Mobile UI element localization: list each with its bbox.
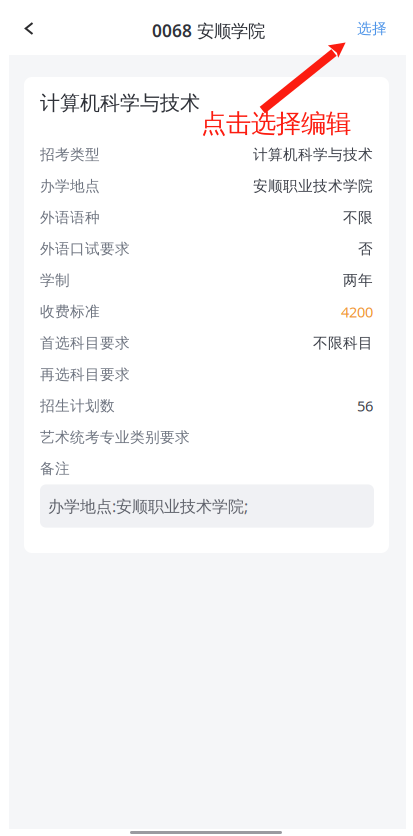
- staticText: 安顺职业技术学院: [253, 177, 373, 195]
- staticText: 选择: [357, 19, 387, 37]
- staticText: 计算机科学与技术: [40, 91, 200, 115]
- staticText: 两年: [343, 271, 373, 289]
- staticText: 首选科目要求: [40, 334, 130, 352]
- staticText: 4200: [341, 302, 373, 321]
- staticText: 0068 安顺学院: [152, 19, 265, 42]
- button[interactable]: Back: [6, 6, 50, 50]
- staticText: 收费标准: [40, 303, 100, 321]
- staticText: 56: [357, 396, 373, 416]
- staticText: 外语口试要求: [40, 240, 130, 258]
- staticText: 办学地点: [40, 177, 100, 195]
- staticText: 不限科目: [313, 334, 373, 352]
- staticText: 不限: [343, 208, 373, 226]
- staticText: 外语语种: [40, 208, 100, 226]
- staticText: 招考类型: [40, 146, 100, 164]
- staticText: 计算机科学与技术: [253, 146, 373, 164]
- button[interactable]: 选择: [343, 6, 401, 50]
- staticText: 备注: [40, 460, 70, 478]
- staticText: 艺术统考专业类别要求: [40, 428, 190, 446]
- staticText: 学制: [40, 271, 70, 289]
- staticText: 办学地点:安顺职业技术学院;: [48, 495, 248, 517]
- staticText: 点击选择编辑: [201, 108, 351, 139]
- staticText: 再选科目要求: [40, 365, 130, 383]
- staticText: 否: [358, 240, 373, 258]
- staticText: 招生计划数: [40, 397, 115, 415]
